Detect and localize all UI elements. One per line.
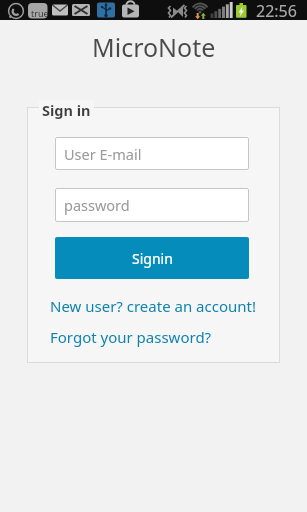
button[interactable]: Forgot your password? (50, 327, 212, 347)
button[interactable]: Signin (55, 237, 249, 279)
staticText: Signin (132, 249, 173, 268)
button[interactable]: password (55, 188, 249, 222)
staticText: MicroNote (92, 30, 216, 64)
staticText: true (31, 7, 49, 19)
staticText: password (64, 195, 130, 215)
staticText: 22:56 (256, 0, 297, 20)
staticText: New user? create an account! (50, 296, 256, 316)
staticText: Forgot your password? (50, 327, 212, 347)
staticText: Sign in (42, 100, 91, 120)
button[interactable]: New user? create an account! (50, 296, 256, 316)
staticText: User E-mail (64, 144, 142, 164)
button[interactable]: User E-mail (55, 137, 249, 170)
